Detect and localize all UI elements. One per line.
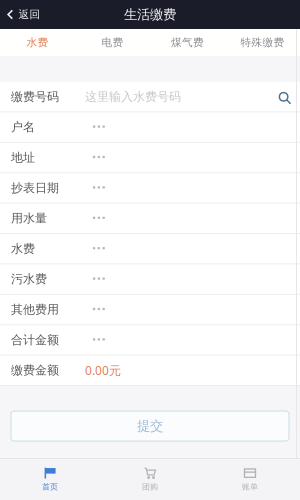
- button[interactable]: 电费: [75, 29, 150, 56]
- staticText: 水费: [11, 241, 35, 256]
- staticText: 生活缴费: [124, 6, 176, 23]
- staticText: 0.00元: [85, 362, 121, 378]
- staticText: 首页: [42, 482, 58, 492]
- staticText: 这里输入水费号码: [85, 89, 181, 104]
- staticText: 团购: [142, 482, 158, 492]
- staticText: 缴费金额: [11, 363, 59, 378]
- staticText: 污水费: [11, 272, 47, 286]
- staticText: 提交: [137, 418, 163, 434]
- button[interactable]: 账单: [200, 459, 300, 500]
- button[interactable]: 煤气费: [150, 29, 225, 56]
- staticText: 煤气费: [171, 36, 204, 49]
- staticText: 缴费号码: [11, 89, 59, 104]
- staticText: 抄表日期: [11, 180, 59, 195]
- button[interactable]: 提交: [11, 411, 289, 441]
- staticText: 地址: [11, 150, 35, 165]
- staticText: 水费: [26, 36, 48, 49]
- staticText: 户名: [11, 120, 35, 134]
- button[interactable]: 返回: [0, 0, 48, 29]
- staticText: 电费: [101, 36, 123, 49]
- staticText: 特殊缴费: [240, 36, 284, 49]
- button[interactable]: 水费: [0, 29, 75, 56]
- staticText: 账单: [242, 482, 258, 492]
- staticText: 用水量: [11, 211, 47, 226]
- button[interactable]: 特殊缴费: [225, 29, 300, 56]
- button[interactable]: 首页: [0, 459, 100, 500]
- button[interactable]: 团购: [100, 459, 200, 500]
- staticText: 其他费用: [11, 302, 59, 317]
- staticText: 返回: [18, 8, 40, 21]
- staticText: 合计金额: [11, 332, 59, 347]
- button[interactable]: 搜索: [278, 83, 300, 111]
